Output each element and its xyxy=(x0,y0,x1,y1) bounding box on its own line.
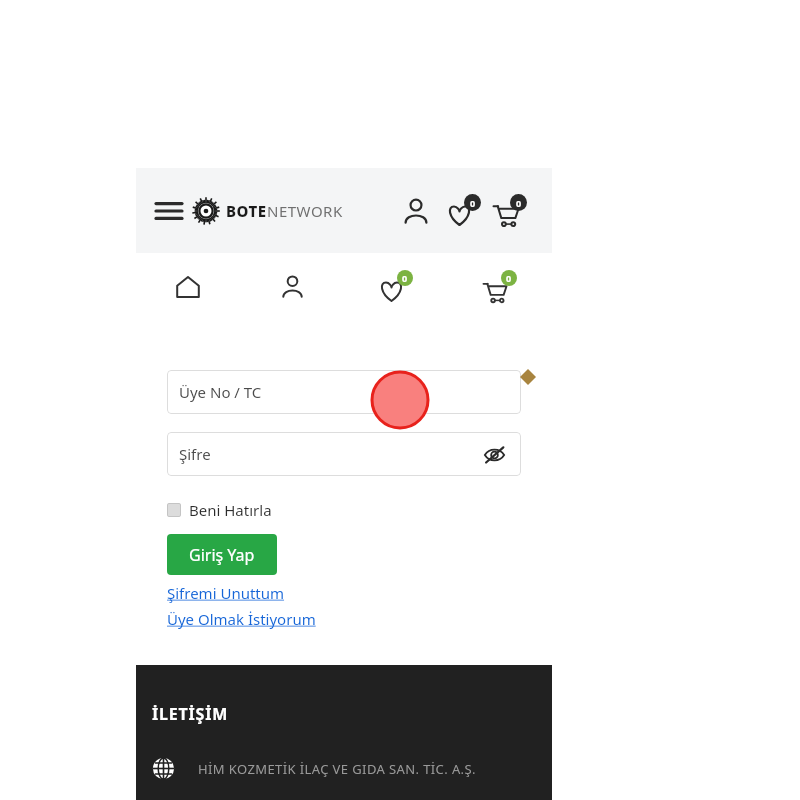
button[interactable]: Cart xyxy=(488,189,532,233)
staticText: 0 xyxy=(516,197,522,209)
button[interactable]: Cart xyxy=(448,253,552,320)
button[interactable]: Şifre xyxy=(167,432,521,476)
staticText: NETWORK xyxy=(267,201,343,221)
staticText: Üye No / TC xyxy=(179,382,262,402)
button[interactable]: BOTE xyxy=(191,196,343,226)
button[interactable]: Favorites xyxy=(442,189,486,233)
staticText: 0 xyxy=(506,272,512,284)
button[interactable]: Giriş Yap xyxy=(167,534,277,575)
button[interactable]: Beni Hatırla xyxy=(167,500,272,520)
button[interactable]: Şifremi Unuttum xyxy=(167,583,285,603)
staticText: Üye Olmak İstiyorum xyxy=(167,609,316,629)
button[interactable]: Show password xyxy=(479,439,509,469)
staticText: İLETİŞİM xyxy=(152,703,229,725)
button[interactable]: HİM KOZMETİK İLAÇ VE GIDA SAN. TİC. A.Ş. xyxy=(152,757,476,780)
staticText: Şifremi Unuttum xyxy=(167,583,285,603)
staticText: Beni Hatırla xyxy=(189,500,272,520)
staticText: BOTE xyxy=(226,201,267,221)
button[interactable]: Üye No / TC xyxy=(167,370,521,414)
staticText: HİM KOZMETİK İLAÇ VE GIDA SAN. TİC. A.Ş. xyxy=(198,760,476,778)
button[interactable]: Account xyxy=(240,253,344,320)
button[interactable]: Account xyxy=(396,191,436,231)
button[interactable]: Menu xyxy=(152,194,186,228)
button[interactable]: Üye Olmak İstiyorum xyxy=(167,609,316,629)
staticText: Şifre xyxy=(179,444,211,464)
staticText: Giriş Yap xyxy=(189,544,255,566)
staticText: 0 xyxy=(402,272,408,284)
button[interactable]: Favorites xyxy=(344,253,448,320)
button[interactable]: Home xyxy=(136,253,240,320)
staticText: 0 xyxy=(470,197,476,209)
